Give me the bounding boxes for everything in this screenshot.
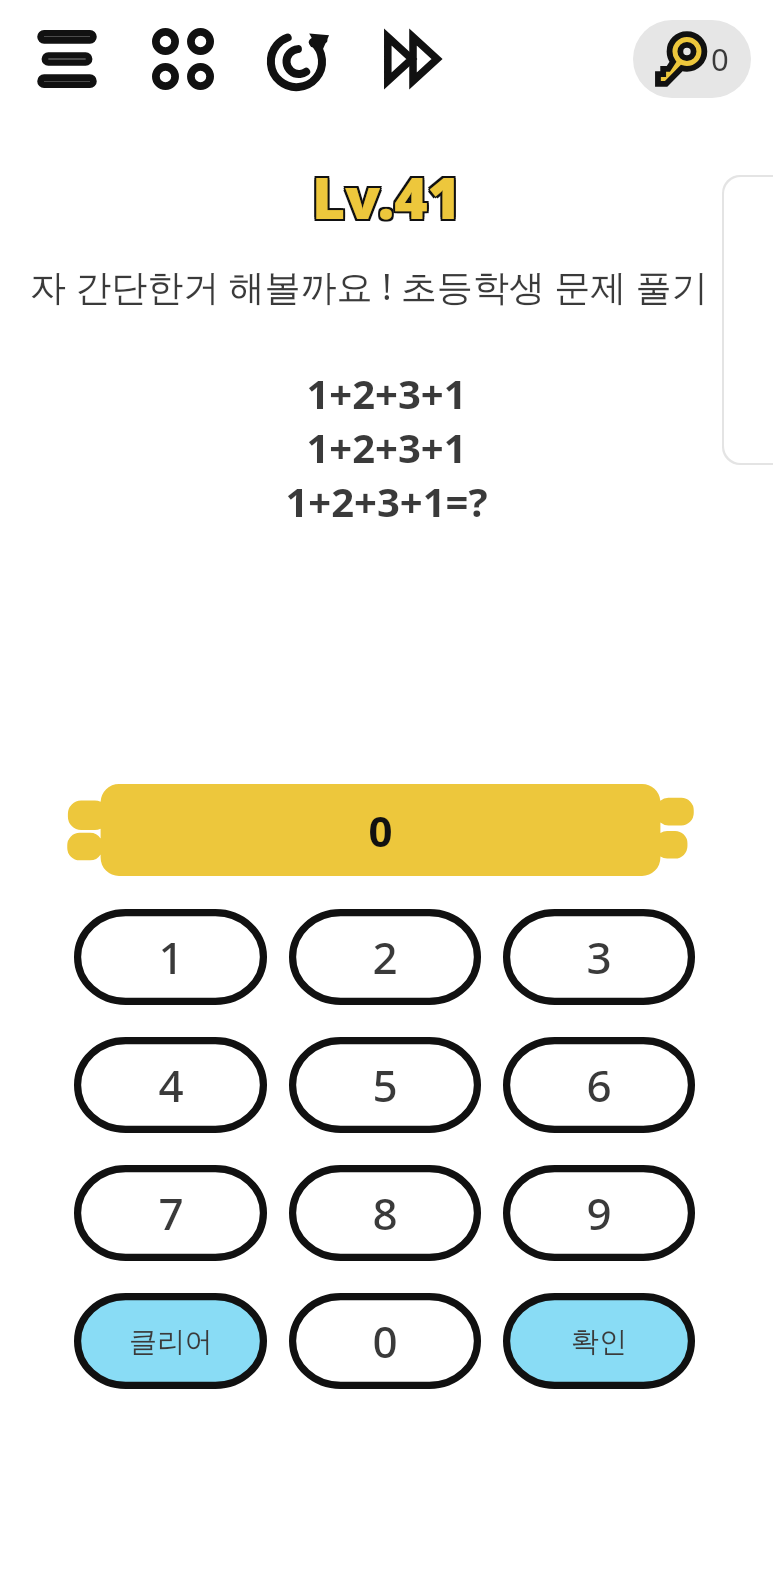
button[interactable]: 0 [289,1293,481,1389]
button[interactable]: 0 [633,20,751,98]
staticText: 1+2+3+1=? [285,474,488,528]
staticText: Lv.41 [310,156,459,234]
staticText: 1+2+3+1 [306,420,467,474]
button[interactable]: 클리어 [74,1293,267,1389]
button[interactable]: 7 [74,1165,267,1261]
button[interactable]: 1 [74,909,267,1005]
button[interactable]: 0 [66,784,695,876]
button[interactable]: Levels [146,22,220,96]
button[interactable]: 확인 [503,1293,695,1389]
button[interactable]: 4 [74,1037,267,1133]
staticText: Lv.41 [312,156,461,234]
staticText: 6 [586,1055,612,1115]
button[interactable]: Restart [262,22,336,96]
staticText: 0 [368,802,393,859]
staticText: 3 [586,927,612,987]
staticText: 클리어 [129,1324,213,1359]
button[interactable]: 9 [503,1165,695,1261]
staticText: 1 [158,927,184,987]
button[interactable]: 5 [289,1037,481,1133]
button[interactable]: 3 [503,909,695,1005]
staticText: 9 [586,1183,612,1243]
staticText: 자 간단한거 해볼까요 ! 초등학생 문제 풀기 [30,262,727,311]
button[interactable]: 2 [289,909,481,1005]
staticText: Lv.41 [312,158,461,236]
staticText: 확인 [571,1324,627,1359]
staticText: 7 [158,1183,184,1243]
staticText: Lv.41 [310,158,459,236]
staticText: Lv.41 [314,156,463,234]
staticText: 5 [372,1055,398,1115]
staticText: Lv.41 [314,158,463,236]
staticText: 0 [711,38,729,80]
button[interactable]: Skip [376,22,450,96]
staticText: 8 [372,1183,398,1243]
staticText: Lv.41 [310,160,459,238]
staticText: 0 [372,1311,398,1371]
staticText: Lv.41 [314,160,463,238]
staticText: Lv.41 [312,160,461,238]
button[interactable]: 8 [289,1165,481,1261]
staticText: 2 [372,927,398,987]
button[interactable]: 6 [503,1037,695,1133]
staticText: 1+2+3+1 [306,366,467,420]
button[interactable]: Menu [30,22,104,96]
staticText: 4 [158,1055,184,1115]
